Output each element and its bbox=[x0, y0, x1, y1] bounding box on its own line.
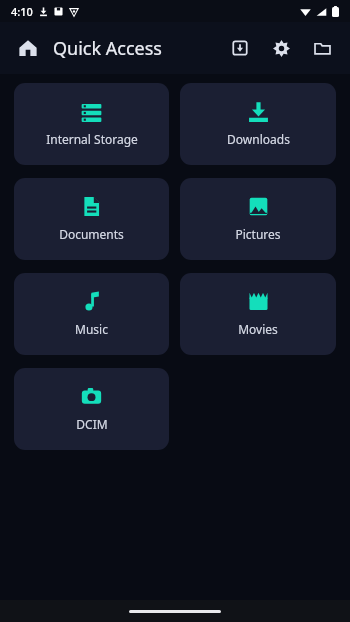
button[interactable]: DCIM bbox=[14, 368, 169, 450]
staticText: 4:10 bbox=[11, 4, 33, 19]
staticText: Music bbox=[75, 321, 108, 337]
button[interactable]: Internal Storage bbox=[14, 83, 169, 165]
button[interactable]: Downloads bbox=[180, 83, 336, 165]
button[interactable]: Music bbox=[14, 273, 169, 355]
staticText: Documents bbox=[59, 226, 124, 242]
staticText: Downloads bbox=[227, 131, 290, 147]
button[interactable]: Home bbox=[11, 31, 45, 65]
staticText: Internal Storage bbox=[46, 131, 138, 147]
button[interactable]: Folders bbox=[305, 31, 339, 65]
staticText: DCIM bbox=[76, 416, 108, 432]
button[interactable]: Downloads bbox=[223, 31, 257, 65]
staticText: Pictures bbox=[235, 226, 281, 242]
button[interactable]: Movies bbox=[180, 273, 336, 355]
staticText: Movies bbox=[238, 321, 278, 337]
button[interactable]: Documents bbox=[14, 178, 169, 260]
button[interactable]: Settings bbox=[264, 31, 298, 65]
button[interactable]: Pictures bbox=[180, 178, 336, 260]
staticText: Quick Access bbox=[53, 36, 162, 61]
